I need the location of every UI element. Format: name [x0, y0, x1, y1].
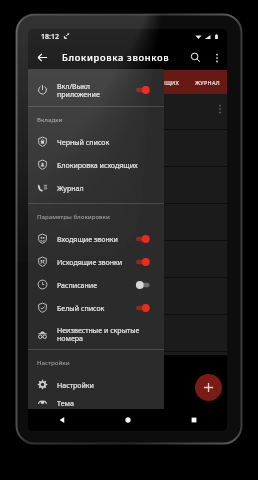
button[interactable]: Черный список [28, 130, 164, 153]
staticText: Настройки [37, 358, 70, 366]
staticText: ИСХОДЯЩИХ [141, 79, 180, 86]
staticText: Неизвестные и скрытые номера [57, 325, 158, 343]
button[interactable]: Настройки [28, 373, 164, 396]
button[interactable] [28, 315, 227, 352]
button[interactable]: Back [28, 409, 95, 431]
button[interactable]: Блокировка исходящих [28, 153, 164, 176]
button[interactable]: More options [209, 50, 224, 65]
button[interactable]: Исходящие звонки [28, 250, 164, 273]
button[interactable] [28, 130, 227, 167]
button[interactable]: Вкл/Выкл приложение [28, 73, 164, 106]
button[interactable]: Item options [28, 94, 227, 130]
staticText: 18:12 [41, 32, 59, 42]
button[interactable]: Журнал [28, 176, 164, 199]
staticText: Вкладки [37, 115, 63, 123]
button[interactable] [28, 167, 227, 204]
button[interactable] [28, 204, 227, 241]
staticText: Входящие звонки [57, 234, 136, 244]
button[interactable]: Search [187, 49, 204, 66]
staticText: Блокировка исходящих [57, 160, 158, 170]
button[interactable]: Белый список [28, 296, 164, 319]
button[interactable]: ИСХОДЯЩИХ [127, 70, 193, 94]
button[interactable]: Toggle Белый список [136, 296, 164, 319]
button[interactable]: Toggle Вкл/Выкл приложение [136, 73, 164, 106]
staticText: Белый список [57, 303, 136, 313]
staticText: Журнал [57, 183, 158, 193]
button[interactable]: Add number [195, 374, 222, 401]
button[interactable] [28, 241, 227, 278]
button[interactable]: ЖУРНАЛ [175, 70, 227, 94]
staticText: Черный список [57, 137, 158, 147]
button[interactable]: Recent apps [161, 409, 227, 431]
button[interactable]: Toggle Расписание [136, 273, 164, 296]
button[interactable]: Home [95, 409, 161, 431]
button[interactable]: Item options [213, 102, 227, 116]
button[interactable]: Неизвестные и скрытые номера [28, 319, 164, 349]
staticText: ВХОДЯЩИХ [74, 79, 108, 86]
button[interactable]: Toggle Входящие звонки [136, 227, 164, 250]
staticText: Вкл/Выкл приложение [57, 81, 136, 99]
button[interactable]: Back [34, 49, 51, 66]
staticText: Расписание [57, 280, 136, 290]
button[interactable]: Входящие звонки [28, 227, 164, 250]
button[interactable] [28, 278, 227, 315]
button[interactable]: Тема [28, 396, 164, 409]
button[interactable]: ВХОДЯЩИХ [58, 70, 124, 94]
staticText: Тема [57, 398, 158, 408]
button[interactable]: Расписание [28, 273, 164, 296]
staticText: Настройки [57, 380, 158, 390]
staticText: ЖУРНАЛ [195, 79, 220, 86]
button[interactable]: Toggle Исходящие звонки [136, 250, 164, 273]
staticText: Параметры блокировки [37, 212, 110, 220]
staticText: Блокировка звонков [62, 51, 170, 64]
staticText: Исходящие звонки [57, 257, 136, 267]
